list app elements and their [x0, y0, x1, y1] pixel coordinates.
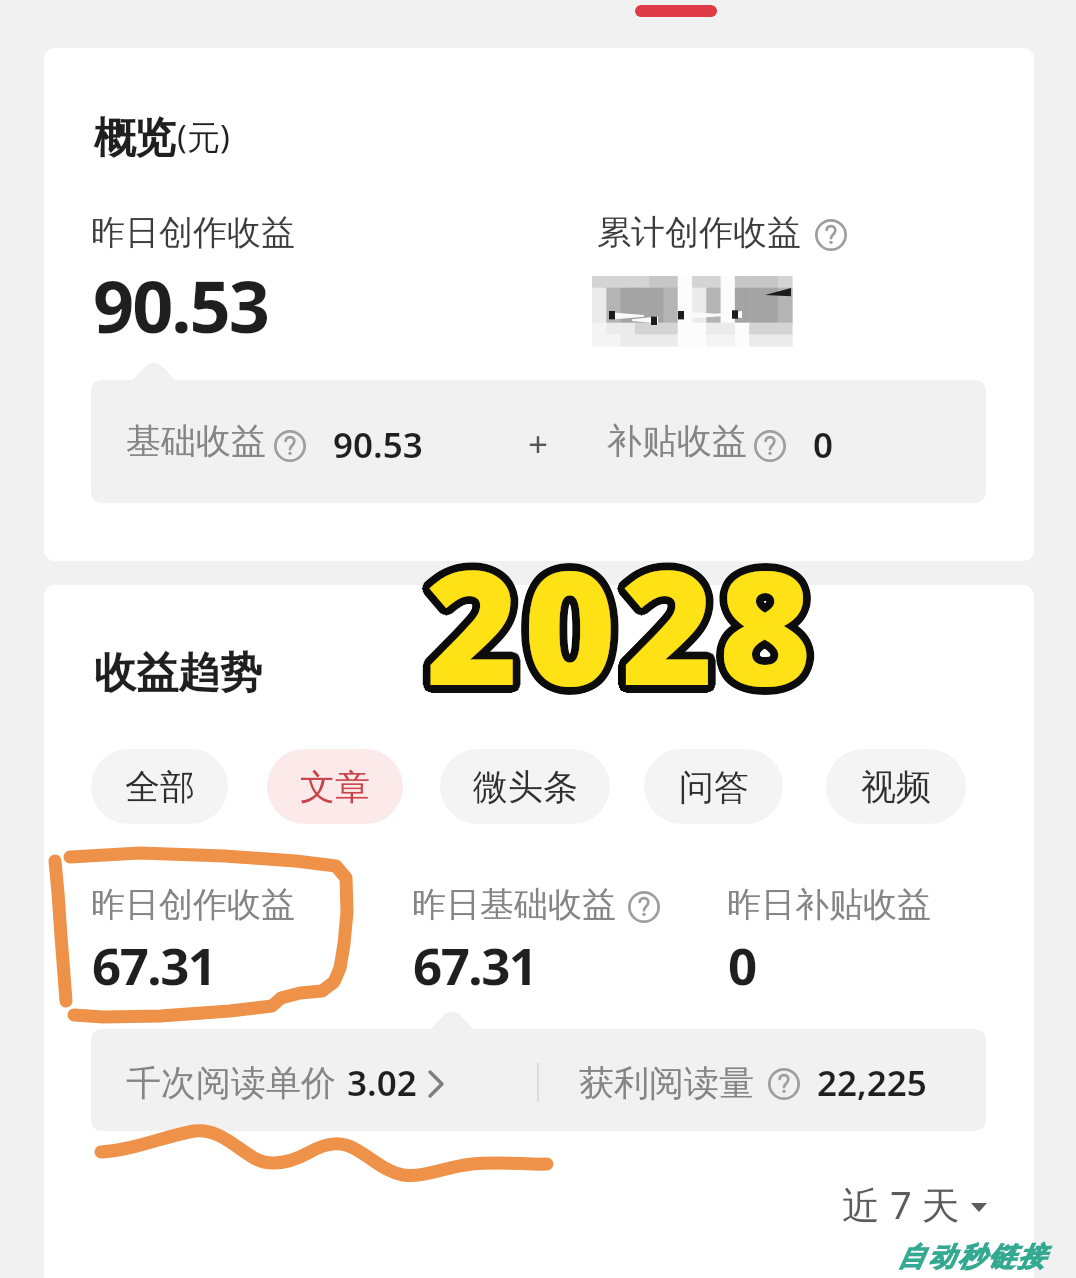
staticText: 2028	[422, 521, 813, 736]
staticText: 视频	[861, 765, 931, 809]
staticText: 2028	[420, 516, 811, 731]
staticText: 2028	[429, 522, 820, 737]
staticText: 2028	[426, 510, 817, 725]
staticText: 昨日创作收益	[91, 883, 295, 926]
staticText: 2028	[420, 520, 811, 735]
button[interactable]: 文章	[267, 749, 403, 824]
button[interactable]	[99, 1031, 529, 1131]
staticText: 2028	[432, 518, 823, 733]
staticText: 2028	[432, 513, 823, 728]
staticText: 0	[728, 930, 758, 999]
staticText: 2028	[431, 511, 822, 726]
staticText: 2028	[420, 517, 811, 732]
staticText: 补贴收益	[607, 419, 747, 463]
staticText: 近 7 天	[842, 1178, 960, 1230]
staticText: 2028	[433, 514, 824, 729]
staticText: 2028	[431, 521, 822, 736]
staticText: 2028	[425, 522, 816, 737]
staticText: 昨日创作收益	[91, 211, 295, 254]
staticText: 2028	[433, 516, 824, 731]
staticText: 2028	[427, 510, 818, 725]
staticText: 获利阅读量	[579, 1061, 754, 1105]
staticText: 2028	[424, 509, 815, 724]
staticText: 2028	[427, 509, 818, 724]
staticText: 2028	[420, 512, 811, 727]
staticText: 2028	[427, 523, 818, 738]
other: Help	[754, 430, 786, 462]
staticText: 2028	[431, 510, 822, 725]
staticText: 2028	[434, 516, 825, 731]
staticText: 2028	[430, 522, 821, 737]
staticText: 2028	[430, 510, 821, 725]
other: Help	[768, 1068, 800, 1100]
staticText: 2028	[421, 522, 812, 737]
staticText: 2028	[420, 519, 811, 734]
staticText: +	[528, 420, 549, 468]
staticText: 2028	[422, 510, 813, 725]
staticText: 2028	[428, 523, 819, 738]
staticText: 2028	[433, 517, 824, 732]
staticText: 2028	[426, 522, 817, 737]
staticText: 2028	[424, 522, 815, 737]
staticText: 累计创作收益	[597, 211, 801, 254]
staticText: 2028	[425, 523, 816, 738]
staticText: 2028	[419, 517, 810, 732]
staticText: 2028	[420, 521, 811, 736]
staticText: 2028	[431, 520, 822, 735]
staticText: 昨日基础收益	[412, 883, 616, 926]
other: Help	[628, 891, 660, 923]
staticText: 2028	[421, 521, 812, 736]
staticText: 2028	[433, 513, 824, 728]
staticText: 2028	[420, 513, 811, 728]
staticText: 2028	[422, 511, 813, 726]
staticText: 2028	[418, 516, 809, 731]
staticText: 2028	[431, 512, 822, 727]
staticText: 2028	[432, 519, 823, 734]
staticText: 2028	[433, 518, 824, 733]
staticText: 2028	[426, 508, 817, 723]
staticText: 2028	[428, 509, 819, 724]
button[interactable]: 视频	[826, 749, 966, 824]
staticText: 昨日补贴收益	[727, 883, 931, 926]
button[interactable]: Selected tab	[635, 5, 717, 17]
staticText: 2028	[432, 521, 823, 736]
staticText: 2028	[433, 515, 824, 730]
staticText: 基础收益	[126, 419, 266, 463]
staticText: 2028	[419, 519, 810, 734]
staticText: 3.02	[347, 1059, 417, 1107]
button[interactable]	[91, 204, 561, 344]
staticText: (元)	[177, 114, 230, 159]
staticText: 2028	[430, 511, 821, 726]
staticText: 2028	[426, 509, 817, 724]
staticText: 2028	[425, 510, 816, 725]
staticText: 2028	[432, 516, 823, 731]
staticText: 2028	[429, 510, 820, 725]
other: View details	[428, 1069, 444, 1099]
staticText: 2028	[432, 514, 823, 729]
staticText: 2028	[430, 521, 821, 736]
staticText: 2028	[419, 514, 810, 729]
staticText: 2028	[426, 524, 817, 739]
staticText: 2028	[428, 510, 819, 725]
staticText: 2028	[423, 523, 814, 738]
staticText: 2028	[429, 523, 820, 738]
staticText: 全部	[125, 765, 195, 809]
staticText: 2028	[423, 522, 814, 737]
staticText: 0	[813, 421, 834, 469]
button[interactable]: 微头条	[440, 749, 610, 824]
staticText: 2028	[420, 511, 811, 726]
staticText: 2028	[429, 509, 820, 724]
staticText: 自动秒链接	[896, 1240, 1046, 1274]
staticText: 问答	[679, 765, 749, 809]
staticText: 2028	[432, 512, 823, 727]
staticText: 90.53	[333, 421, 423, 469]
button[interactable]: 近 7 天	[830, 1172, 1002, 1236]
staticText: 2028	[419, 516, 810, 731]
other: Help	[274, 430, 306, 462]
button[interactable]	[591, 204, 991, 344]
button[interactable]: 问答	[644, 749, 783, 824]
staticText: 2028	[420, 515, 811, 730]
staticText: 收益趋势	[94, 647, 262, 700]
staticText: 2028	[419, 518, 810, 733]
button[interactable]: 全部	[91, 749, 228, 824]
